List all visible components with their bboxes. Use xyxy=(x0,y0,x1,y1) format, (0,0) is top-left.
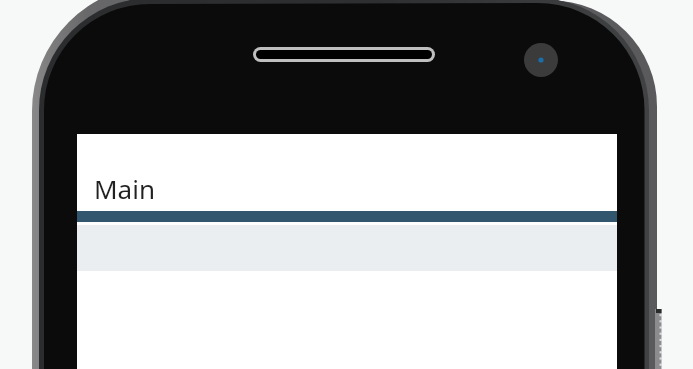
button[interactable]: Main xyxy=(77,134,617,211)
staticText: Main xyxy=(94,171,155,206)
